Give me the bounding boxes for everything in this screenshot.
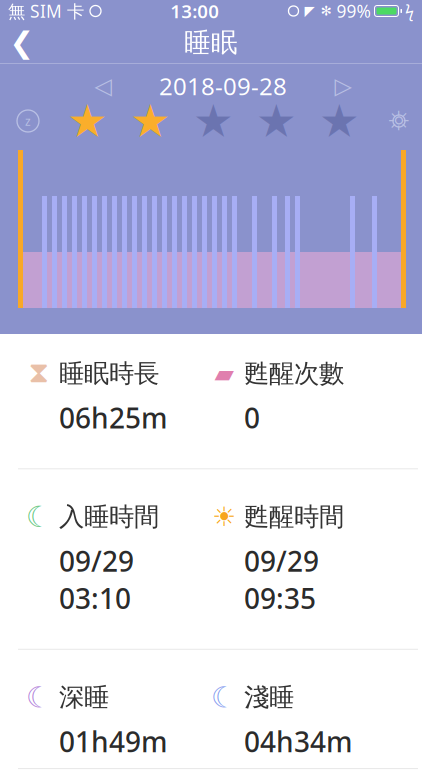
staticText: ★: [67, 95, 108, 147]
staticText: 深睡: [59, 682, 109, 713]
staticText: 2018-09-28: [159, 70, 287, 102]
staticText: ✻: [320, 3, 331, 18]
staticText: ☾: [211, 681, 237, 714]
staticText: ★: [193, 95, 234, 147]
staticText: 入睡時間: [59, 501, 159, 532]
staticText: ◤: [304, 3, 314, 18]
staticText: 13:00: [170, 0, 219, 23]
staticText: 09/29 03:10: [59, 542, 134, 617]
staticText: ☾: [26, 681, 52, 714]
staticText: 06h25m: [59, 399, 168, 436]
button[interactable]: Previous day: [86, 72, 120, 100]
staticText: 09/29 09:35: [244, 542, 319, 617]
staticText: 無 SIM 卡: [8, 0, 84, 22]
staticText: 甦醒次數: [244, 358, 344, 389]
staticText: ▷: [334, 73, 351, 99]
staticText: ϟ: [405, 0, 414, 22]
staticText: ❮: [9, 26, 34, 59]
button[interactable]: Next day: [326, 72, 360, 100]
staticText: 睡眠: [184, 26, 238, 59]
staticText: 睡眠時長: [59, 358, 159, 389]
staticText: ☼: [387, 106, 411, 136]
staticText: 甦醒時間: [244, 501, 344, 532]
staticText: 淺睡: [244, 682, 294, 713]
button[interactable]: Back: [0, 22, 44, 62]
staticText: 0: [244, 399, 260, 436]
staticText: 99%: [336, 0, 370, 22]
staticText: ◁: [94, 73, 111, 99]
staticText: ★: [130, 95, 171, 147]
staticText: ▰: [214, 359, 233, 388]
staticText: [84, 0, 90, 26]
staticText: ⧗: [28, 359, 49, 388]
staticText: ★: [256, 95, 297, 147]
staticText: ★: [319, 95, 360, 147]
staticText: ☾: [26, 500, 52, 533]
staticText: 04h34m: [244, 723, 353, 760]
staticText: z: [25, 113, 31, 129]
staticText: 01h49m: [59, 723, 168, 760]
staticText: ☀: [212, 502, 236, 532]
